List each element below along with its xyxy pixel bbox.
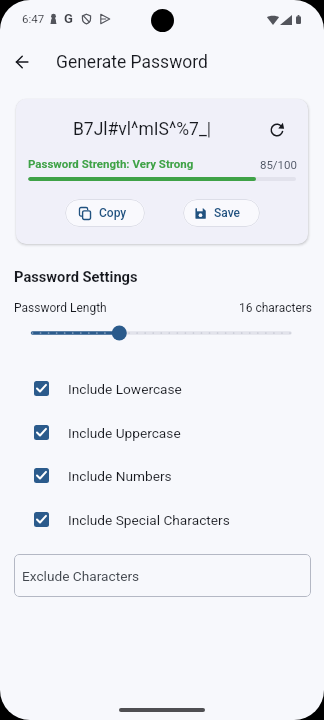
button[interactable]: Regenerate password (261, 115, 293, 145)
staticText: Password Length (14, 301, 107, 315)
button[interactable]: Exclude Characters (14, 554, 311, 597)
staticText: 16 characters (232, 301, 312, 315)
staticText: Password Strength: Very Strong (28, 157, 194, 170)
button[interactable]: Include Numbers (0, 454, 324, 498)
staticText: 85/100 (256, 158, 297, 171)
button[interactable]: Include Special Characters (0, 498, 324, 542)
button[interactable]: Password length slider (22, 322, 300, 344)
staticText: Exclude Characters (22, 568, 140, 584)
staticText: Include Special Characters (68, 512, 230, 528)
button[interactable]: Copy (65, 199, 145, 227)
button[interactable]: Include Lowercase (0, 367, 324, 411)
staticText: B7Jl#vl^mIS^%7_| (22, 119, 262, 140)
staticText: Copy (99, 206, 127, 220)
button[interactable]: Save (183, 199, 260, 227)
staticText: Include Lowercase (68, 381, 182, 397)
staticText: Password Settings (14, 268, 138, 285)
staticText: G (64, 11, 73, 26)
staticText: Include Numbers (68, 468, 172, 484)
staticText: 6:47 (22, 12, 45, 25)
button[interactable]: Include Uppercase (0, 411, 324, 455)
staticText: Include Uppercase (68, 425, 181, 441)
staticText: Save (214, 206, 240, 220)
staticText: Generate Password (56, 52, 208, 73)
button[interactable]: Back (2, 40, 42, 84)
